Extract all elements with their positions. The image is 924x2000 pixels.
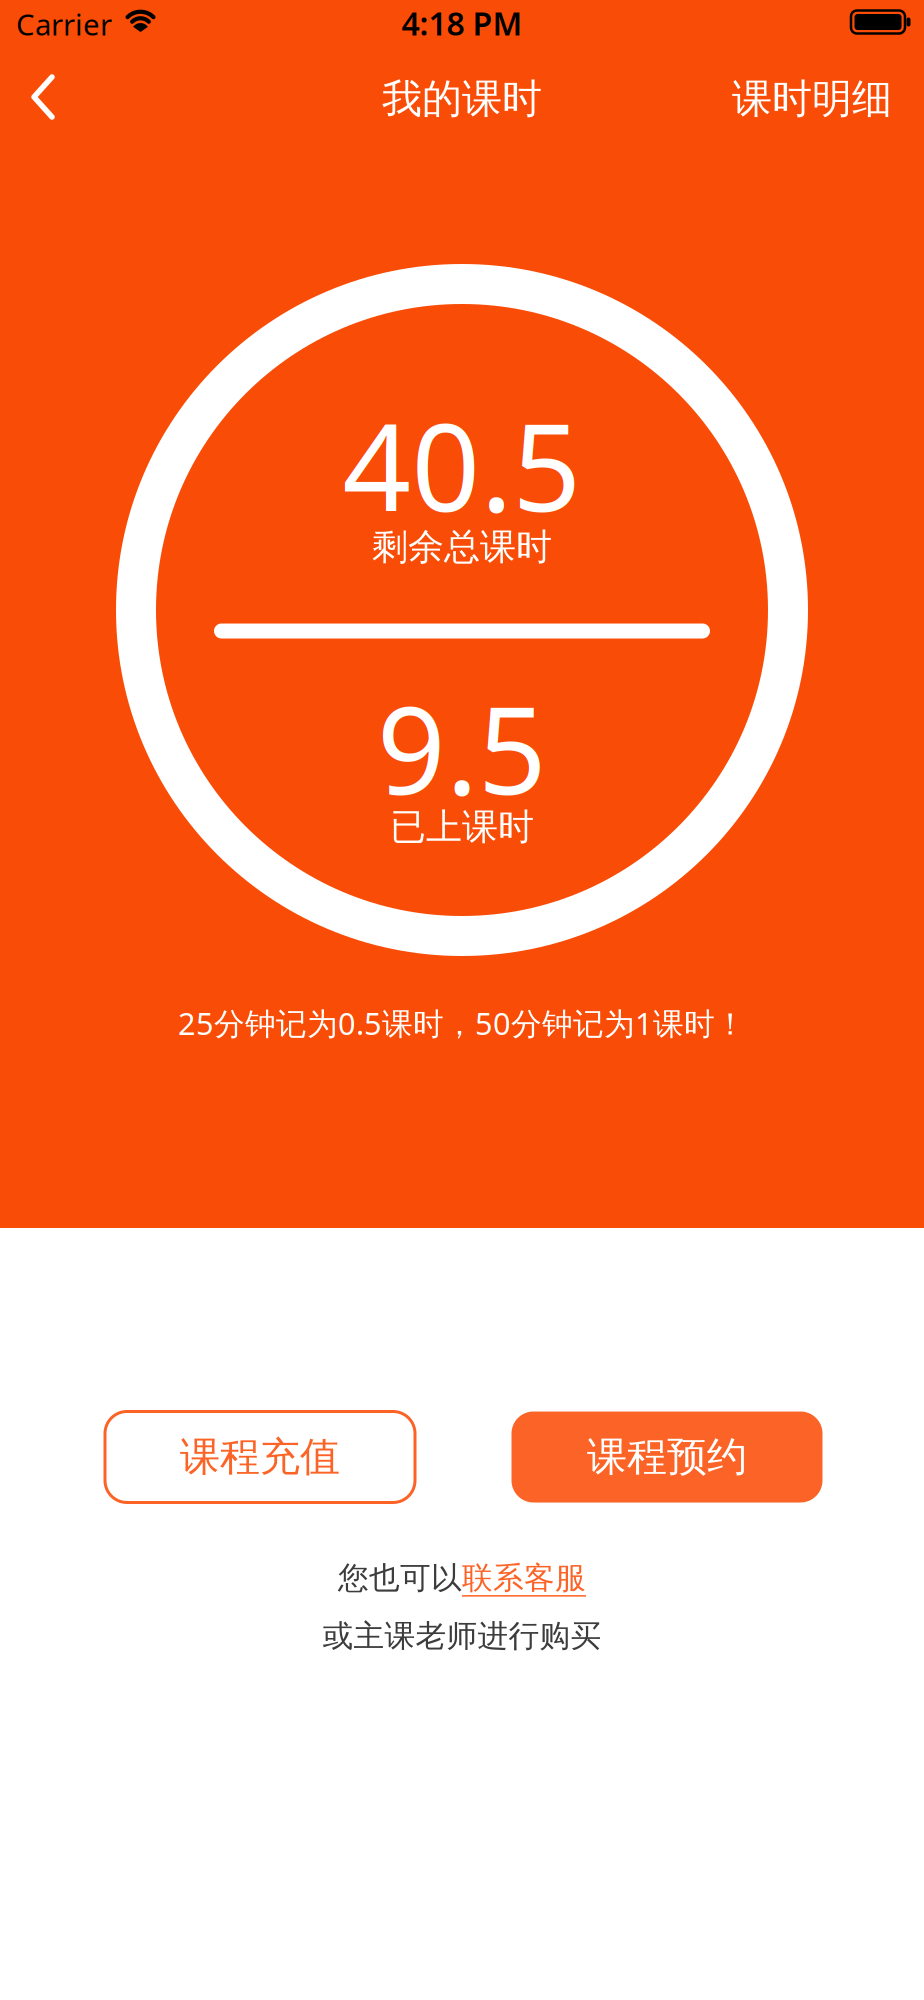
staticText: 课时明细	[732, 74, 892, 123]
staticText: 或主课老师进行购买	[322, 1617, 601, 1655]
button[interactable]: 课时明细	[732, 64, 892, 133]
staticText: 剩余总课时	[372, 525, 552, 569]
staticText: 我的课时	[382, 74, 542, 123]
staticText: 40.5	[342, 385, 581, 545]
button[interactable]: 课程充值	[105, 1411, 415, 1502]
staticText: 4:18 PM	[401, 2, 522, 44]
staticText: Carrier	[16, 4, 112, 43]
staticText: 课程预约	[587, 1432, 747, 1481]
staticText: 课程充值	[180, 1432, 340, 1481]
staticText: 9.5	[377, 668, 547, 828]
staticText: 您也可以	[338, 1559, 462, 1597]
button[interactable]: Back	[17, 61, 69, 133]
staticText: 已上课时	[390, 805, 534, 849]
staticText: 联系客服	[462, 1559, 586, 1597]
staticText: 25分钟记为0.5课时，50分钟记为1课时！	[178, 1003, 746, 1043]
button[interactable]: 课程预约	[511, 1411, 822, 1502]
button[interactable]: 您也可以	[338, 1559, 586, 1597]
